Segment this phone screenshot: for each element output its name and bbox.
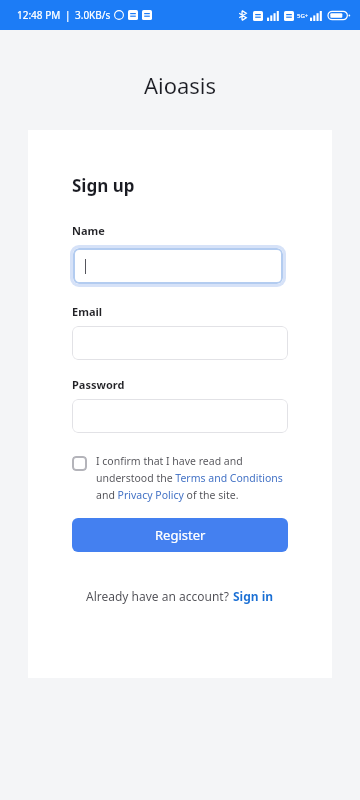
staticText: Already have an account? <box>86 588 233 604</box>
staticText: I confirm that I have read and understoo… <box>96 454 288 502</box>
button[interactable] <box>70 245 286 287</box>
button[interactable] <box>72 399 288 433</box>
staticText: Register <box>155 526 206 544</box>
staticText: Aioasis <box>0 70 360 100</box>
staticText: 3.0KB/s <box>75 8 111 22</box>
staticText: Sign up <box>72 174 135 197</box>
button[interactable]: Sign in <box>233 588 274 604</box>
staticText: 5G+ <box>297 12 309 20</box>
button[interactable]: Register <box>72 518 288 552</box>
button[interactable] <box>72 326 288 360</box>
button[interactable]: Confirm terms checkbox <box>72 456 87 471</box>
staticText: Sign in <box>233 588 274 604</box>
staticText: 12:48 PM <box>17 8 61 22</box>
staticText: Name <box>72 223 105 238</box>
staticText: | <box>65 8 71 22</box>
staticText: Email <box>72 304 103 319</box>
staticText: Password <box>72 377 125 392</box>
